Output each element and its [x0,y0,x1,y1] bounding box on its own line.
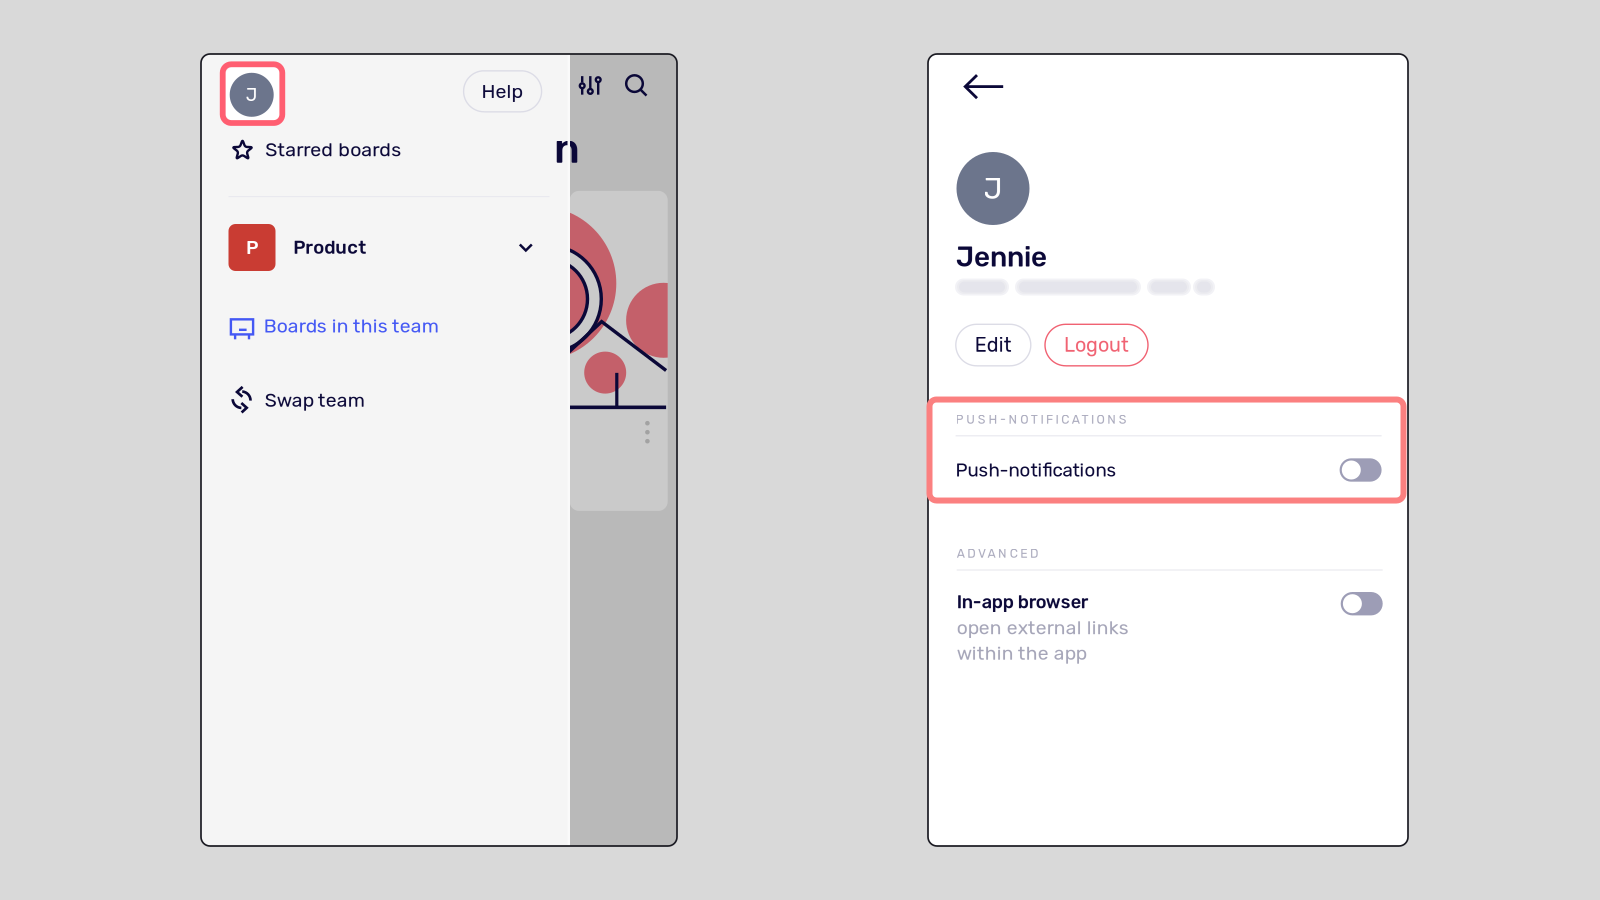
button[interactable]: Starred boards [228,130,558,170]
staticText: Push-notifications [956,459,1117,481]
button[interactable]: Help [464,71,542,112]
button[interactable]: Logout [1045,324,1148,366]
button[interactable]: Swap team [228,382,558,422]
button[interactable]: Account [230,73,274,117]
button[interactable]: Back [953,62,1015,112]
staticText: ADVANCED [957,546,1038,561]
staticText: Help [482,80,524,103]
staticText: Jennie [956,241,1047,273]
staticText: Logout [1064,333,1129,357]
staticText: Edit [975,333,1012,357]
staticText: n [554,124,580,173]
staticText: J [246,84,258,106]
button[interactable]: P [228,224,558,271]
staticText: within the app [957,642,1087,665]
staticText: Swap team [265,389,365,411]
staticText: open external links [957,616,1129,639]
staticText: J [983,171,1002,206]
staticText: Starred boards [265,138,401,161]
staticText: In-app browser [957,591,1089,613]
button[interactable]: Push-notifications [956,454,1382,486]
button[interactable]: In-app browser [957,588,1383,678]
staticText: Boards in this team [264,314,439,337]
staticText: P [246,236,258,259]
button[interactable]: Edit [956,324,1031,366]
staticText: PUSH-NOTIFICATIONS [956,412,1127,427]
staticText: Product [293,236,366,258]
button[interactable]: Boards in this team [228,308,558,348]
